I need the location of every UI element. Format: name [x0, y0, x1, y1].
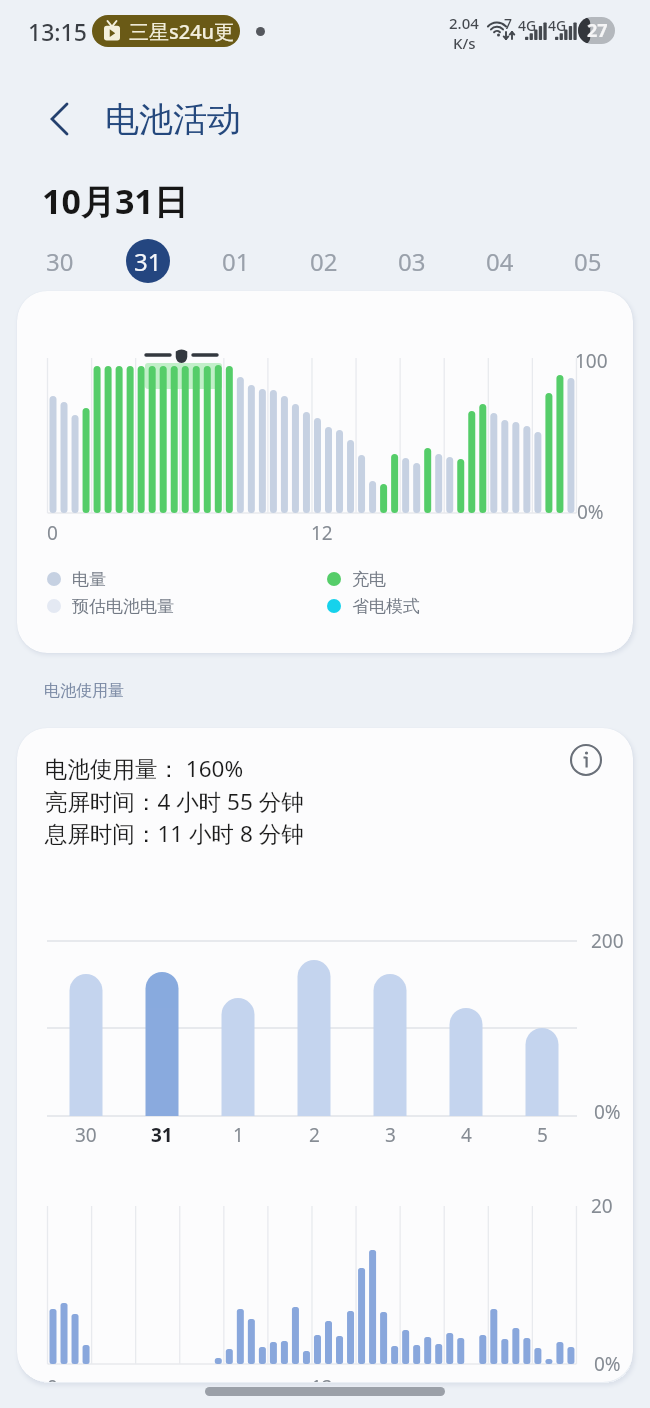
- staticText: 03: [398, 245, 426, 278]
- staticText: 1: [233, 1122, 244, 1148]
- button[interactable]: 31: [126, 239, 170, 283]
- staticText: 息屏时间：11 小时 8 分钟: [45, 818, 304, 849]
- button[interactable]: 通知: [92, 15, 240, 47]
- staticText: 100: [575, 348, 608, 374]
- staticText: 4G: [548, 16, 567, 35]
- staticText: 电池活动: [105, 98, 241, 141]
- staticText: 5: [537, 1122, 548, 1148]
- staticText: 0: [47, 1374, 58, 1382]
- button[interactable]: 信息: [564, 738, 608, 782]
- staticText: 02: [310, 245, 338, 278]
- staticText: 4G: [518, 16, 537, 35]
- staticText: 20: [591, 1193, 613, 1219]
- staticText: K/s: [453, 33, 476, 53]
- button[interactable]: 30: [38, 239, 82, 283]
- staticText: 27: [587, 18, 608, 43]
- staticText: 4: [461, 1122, 472, 1148]
- button[interactable]: 04: [478, 239, 522, 283]
- staticText: 200: [591, 928, 624, 954]
- staticText: 13:15: [28, 16, 87, 47]
- button[interactable]: 03: [390, 239, 434, 283]
- staticText: 电池使用量： 160%: [45, 753, 244, 784]
- staticText: 0%: [594, 1351, 621, 1377]
- staticText: 05: [574, 245, 602, 278]
- staticText: 电量: [72, 569, 106, 590]
- staticText: 电池使用量: [44, 681, 124, 701]
- staticText: 31: [134, 245, 162, 278]
- staticText: 12: [311, 1374, 333, 1382]
- staticText: 0%: [594, 1099, 621, 1125]
- staticText: 预估电池电量: [72, 596, 174, 617]
- staticText: 充电: [352, 569, 386, 590]
- staticText: 10月31日: [42, 178, 188, 224]
- button[interactable]: 01: [214, 239, 258, 283]
- staticText: 01: [222, 245, 250, 278]
- staticText: 30: [46, 245, 74, 278]
- button[interactable]: 返回: [36, 95, 84, 143]
- staticText: 2.04: [449, 13, 479, 33]
- staticText: 0%: [577, 499, 604, 525]
- button[interactable]: 05: [566, 239, 610, 283]
- staticText: 7: [504, 14, 513, 33]
- button[interactable]: 02: [302, 239, 346, 283]
- staticText: 04: [486, 245, 514, 278]
- staticText: 3: [385, 1122, 396, 1148]
- staticText: 12: [311, 520, 333, 546]
- staticText: 省电模式: [352, 596, 420, 617]
- staticText: 2: [309, 1122, 320, 1148]
- staticText: 30: [75, 1122, 97, 1148]
- staticText: 三星s24u更: [129, 18, 235, 45]
- staticText: 亮屏时间：4 小时 55 分钟: [45, 786, 304, 817]
- staticText: 0: [47, 520, 58, 546]
- staticText: 31: [151, 1122, 173, 1148]
